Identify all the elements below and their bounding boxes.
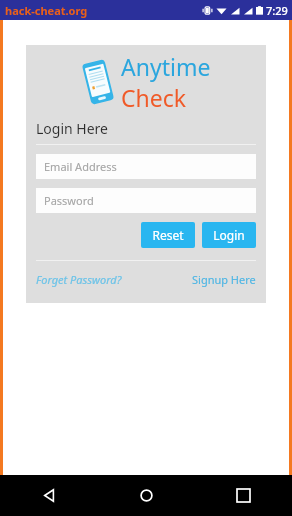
button[interactable]: Password: [36, 188, 256, 213]
button[interactable]: Signup Here: [192, 270, 256, 289]
button[interactable]: Forget Password?: [36, 270, 122, 289]
button[interactable]: Back: [0, 475, 98, 516]
button[interactable]: Reset: [141, 222, 195, 248]
staticText: Signup Here: [192, 272, 256, 287]
staticText: Anytime: [121, 51, 211, 82]
staticText: Forget Password?: [36, 272, 122, 287]
button[interactable]: Login: [202, 222, 256, 248]
staticText: Login: [213, 227, 245, 243]
button[interactable]: Email Address: [36, 154, 256, 179]
staticText: Check: [121, 82, 187, 113]
staticText: Password: [44, 193, 94, 208]
button[interactable]: Recent apps: [195, 475, 292, 516]
staticText: Login Here: [36, 119, 108, 138]
staticText: Reset: [152, 227, 184, 243]
staticText: Email Address: [44, 159, 117, 174]
staticText: hack-cheat.org: [5, 3, 88, 18]
button[interactable]: Home: [98, 475, 195, 516]
staticText: 7:29: [266, 3, 288, 18]
